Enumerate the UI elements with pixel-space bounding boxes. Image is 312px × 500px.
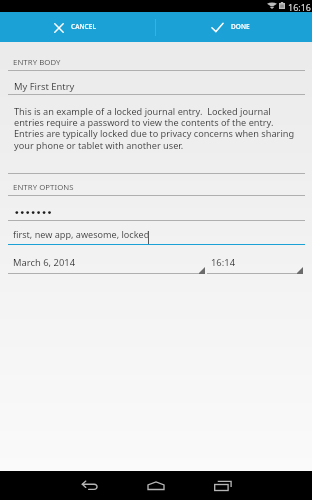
staticText: entries require a password to view the c… bbox=[14, 116, 274, 129]
staticText: March 6, 2014 bbox=[13, 256, 76, 269]
staticText: My First Entry bbox=[14, 80, 75, 93]
staticText: your phone or tablet with another user. bbox=[14, 139, 184, 152]
staticText: Entries are typically locked due to priv… bbox=[14, 127, 295, 140]
staticText: This is an example of a locked journal e… bbox=[14, 105, 271, 118]
staticText: CANCEL bbox=[71, 22, 96, 31]
button[interactable] bbox=[0, 196, 312, 220]
button[interactable]: 16:14 bbox=[207, 245, 303, 274]
button[interactable]: Recent apps bbox=[193, 471, 253, 500]
button[interactable]: DONE bbox=[156, 12, 312, 42]
button[interactable]: This is an example of a locked journal e… bbox=[0, 95, 312, 173]
staticText: ENTRY BODY bbox=[13, 57, 61, 68]
staticText: first, new app, awesome, locked bbox=[13, 228, 150, 240]
staticText: 16:16 bbox=[288, 1, 312, 13]
button[interactable]: first, new app, awesome, locked bbox=[0, 221, 312, 245]
staticText: 16:14 bbox=[211, 256, 236, 269]
button[interactable]: Back bbox=[60, 471, 120, 500]
button[interactable]: CANCEL bbox=[0, 12, 156, 42]
button[interactable]: March 6, 2014 bbox=[8, 245, 205, 274]
staticText: DONE bbox=[231, 22, 250, 31]
button[interactable]: My First Entry bbox=[0, 71, 312, 94]
button[interactable]: Home bbox=[126, 471, 186, 500]
staticText: ENTRY OPTIONS bbox=[13, 182, 74, 193]
